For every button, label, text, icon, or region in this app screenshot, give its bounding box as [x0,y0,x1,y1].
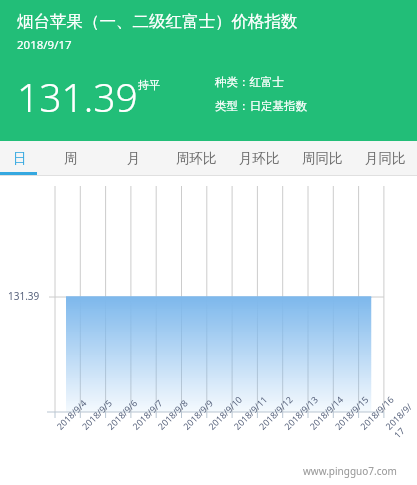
staticText: 131.39 [17,70,138,123]
button[interactable]: 月同比 [354,141,417,176]
staticText: 种类：红富士 [215,75,284,89]
staticText: 月环比 [239,150,280,167]
staticText: 周环比 [176,150,217,167]
staticText: 月 [127,150,141,167]
staticText: 2018/9/17 [17,37,72,53]
button[interactable]: 周 [39,141,102,176]
button[interactable]: 日 [0,141,39,176]
staticText: 月同比 [365,150,406,167]
staticText: 烟台苹果（一、二级红富士）价格指数 [17,11,298,32]
staticText: 持平 [138,78,160,92]
button[interactable]: 月环比 [228,141,291,176]
staticText: 周 [64,150,78,167]
button[interactable]: 周环比 [165,141,228,176]
staticText: 日 [13,150,27,167]
button[interactable]: 周同比 [291,141,354,176]
button[interactable]: 月 [102,141,165,176]
staticText: 周同比 [302,150,343,167]
staticText: 类型：日定基指数 [215,99,307,113]
